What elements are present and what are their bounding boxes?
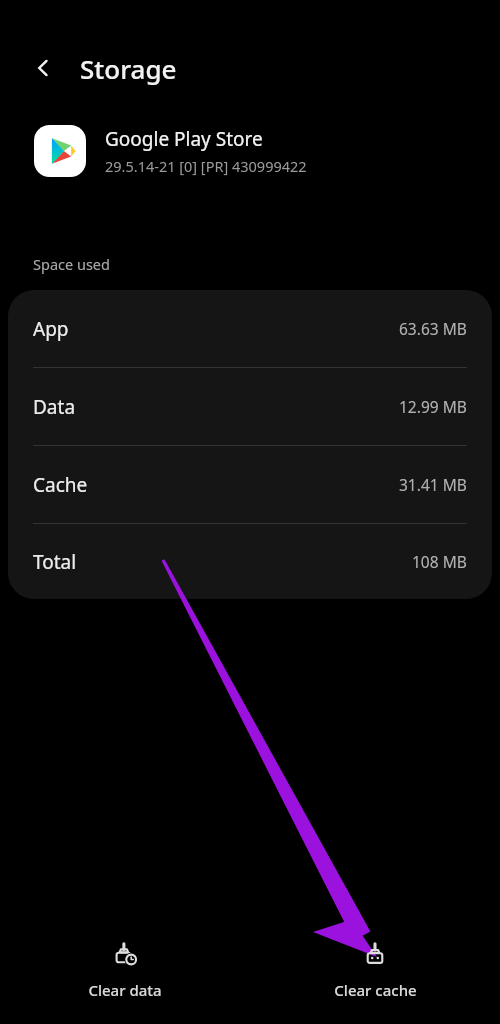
- staticText: Cache: [33, 472, 88, 498]
- staticText: Clear data: [88, 980, 162, 1000]
- staticText: Data: [33, 394, 76, 420]
- staticText: Google Play Store: [105, 126, 263, 152]
- staticText: Storage: [80, 51, 177, 86]
- staticText: 29.5.14-21 [0] [PR] 430999422: [105, 156, 307, 176]
- staticText: Total: [33, 549, 77, 575]
- button[interactable]: App: [8, 290, 492, 367]
- button[interactable]: Data: [8, 368, 492, 445]
- button[interactable]: Clear cache: [250, 916, 500, 1024]
- button[interactable]: Back: [22, 47, 64, 89]
- staticText: Space used: [33, 254, 110, 274]
- staticText: 108 MB: [412, 551, 467, 572]
- button[interactable]: Google Play Store: [0, 110, 500, 192]
- staticText: 31.41 MB: [399, 474, 467, 495]
- staticText: 63.63 MB: [399, 318, 467, 339]
- staticText: Clear cache: [334, 980, 417, 1000]
- staticText: 12.99 MB: [399, 396, 467, 417]
- button[interactable]: Clear data: [0, 916, 250, 1024]
- button[interactable]: Cache: [8, 446, 492, 523]
- staticText: App: [33, 316, 69, 342]
- button[interactable]: Total: [8, 524, 492, 599]
